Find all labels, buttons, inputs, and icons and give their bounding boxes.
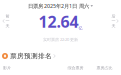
staticText: 12.64 <box>38 11 78 32</box>
staticText: 前 <box>5 14 9 18</box>
button[interactable]: 前 <box>0 14 12 28</box>
staticText: 日票房 2025年2月1日 周六 <box>28 2 89 10</box>
staticText: 实时票房 22:20 更新 <box>43 37 78 42</box>
staticText: 天 <box>5 23 9 28</box>
staticText: 票房预测排名 <box>10 52 52 60</box>
button[interactable]: 票房预测排名 <box>0 51 121 61</box>
button[interactable]: 日票房 2025年2月1日 周六 <box>26 1 95 11</box>
staticText: 票房占比 <box>96 65 112 70</box>
button[interactable]: 后 <box>109 14 121 28</box>
staticText: 一 <box>111 18 115 23</box>
staticText: 后 <box>111 14 115 18</box>
staticText: 亿 <box>78 26 82 31</box>
staticText: 天 <box>111 23 115 28</box>
staticText: 影片 <box>3 65 11 70</box>
staticText: 一 <box>5 18 9 23</box>
staticText: 综合票房 <box>67 65 83 70</box>
